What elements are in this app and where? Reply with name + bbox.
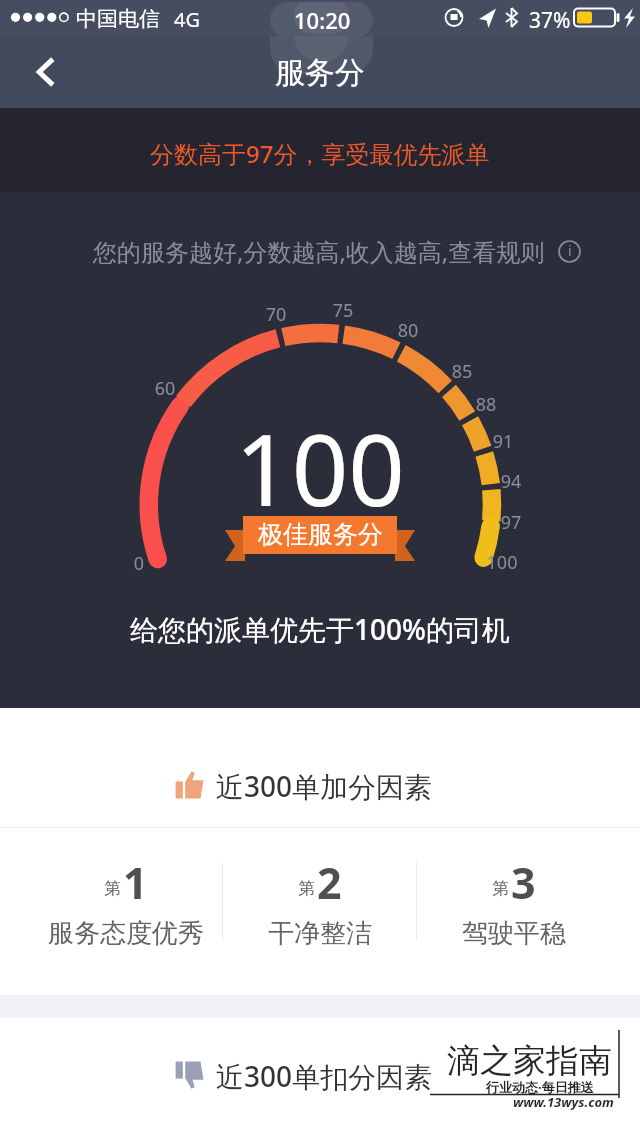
staticText: 分数高于97分，享受最优先派单 (150, 137, 490, 170)
staticText: 85 (437, 359, 487, 384)
staticText: 第 (104, 878, 121, 899)
staticText: 滴之家指南 (447, 1040, 612, 1082)
staticText: 1 (123, 853, 148, 912)
staticText: 60 (140, 376, 190, 401)
staticText: 91 (478, 429, 528, 454)
staticText: 服务分 (275, 54, 365, 92)
staticText: 驾驶平稳 (462, 917, 566, 950)
button[interactable]: 第 (223, 853, 416, 950)
staticText: 4G (174, 6, 200, 33)
staticText: 100 (477, 550, 527, 575)
staticText: 行业动态·每日推送 (486, 1078, 594, 1096)
staticText: 第 (298, 878, 315, 899)
staticText: 80 (383, 318, 433, 343)
staticText: 97 (486, 510, 536, 535)
staticText: 37% (529, 6, 571, 35)
staticText: 中国电信 (76, 6, 160, 32)
staticText: 近300单加分因素 (216, 767, 433, 805)
staticText: i (568, 241, 572, 260)
staticText: 2 (317, 853, 342, 912)
staticText: www.13wys.com (513, 1093, 614, 1111)
staticText: 近300单扣分因素 (216, 1057, 433, 1095)
staticText: 给您的派单优先于100%的司机 (130, 610, 510, 648)
staticText: 70 (251, 302, 301, 327)
staticText: 100 (235, 400, 405, 535)
staticText: 0 (114, 551, 164, 576)
staticText: 3 (511, 853, 536, 912)
button[interactable]: 第 (30, 853, 222, 950)
staticText: 第 (492, 878, 509, 899)
button[interactable]: 近300单扣分因素 (0, 1018, 640, 1138)
staticText: 94 (486, 469, 536, 494)
staticText: 服务态度优秀 (48, 917, 204, 950)
button[interactable]: Back (22, 48, 70, 96)
staticText: 88 (461, 392, 511, 417)
staticText: 10:20 (294, 5, 351, 35)
staticText: 干净整洁 (268, 917, 372, 950)
button[interactable]: 近300单加分因素 (0, 708, 640, 827)
staticText: 您的服务越好,分数越高,收入越高,查看规则 (93, 235, 545, 268)
staticText: 极佳服务分 (258, 519, 383, 550)
staticText: 75 (318, 298, 368, 323)
button[interactable]: Rules (558, 240, 581, 263)
button[interactable]: 第 (417, 853, 610, 950)
